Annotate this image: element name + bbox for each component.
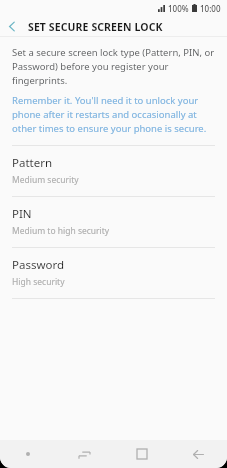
staticText: High security [12, 276, 65, 288]
button[interactable]: PIN [0, 197, 227, 247]
staticText: Pattern [12, 155, 53, 171]
button[interactable]: Back [170, 440, 227, 468]
staticText: PIN [12, 206, 32, 222]
staticText: Remember it. You'll need it to unlock yo… [12, 94, 215, 135]
staticText: Medium security [12, 174, 79, 186]
button[interactable]: Password [0, 248, 227, 298]
staticText: Password [12, 257, 65, 273]
staticText: Set a secure screen lock type (Pattern, … [12, 46, 215, 87]
button[interactable]: Home [113, 440, 170, 468]
staticText: 10:00 [200, 3, 221, 14]
staticText: SET SECURE SCREEN LOCK [28, 20, 163, 34]
button[interactable]: Pattern [0, 146, 227, 196]
button[interactable]: Recent apps [56, 440, 113, 468]
staticText: Medium to high security [12, 225, 110, 237]
button[interactable]: Navigate up [0, 16, 24, 37]
button[interactable]: Assistant [0, 440, 56, 468]
staticText: 100% [168, 3, 189, 14]
